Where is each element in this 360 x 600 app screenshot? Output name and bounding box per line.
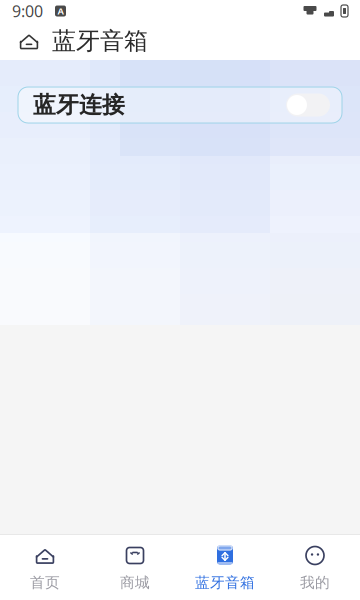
staticText: 首页	[30, 573, 60, 591]
staticText: 蓝牙音箱	[52, 26, 148, 56]
staticText: 9:00	[12, 0, 43, 22]
staticText: 蓝牙连接	[33, 91, 125, 119]
button[interactable]: 蓝牙音箱	[180, 535, 270, 600]
staticText: 我的	[300, 573, 330, 591]
button[interactable]: 蓝牙连接	[286, 93, 330, 116]
button[interactable]: 我的	[270, 535, 360, 600]
button[interactable]: 商城	[90, 535, 180, 600]
staticText: A	[57, 5, 63, 17]
button[interactable]: 首页	[0, 535, 90, 600]
staticText: 商城	[120, 573, 150, 591]
staticText: 蓝牙音箱	[195, 573, 255, 591]
button[interactable]: Home	[16, 28, 42, 54]
